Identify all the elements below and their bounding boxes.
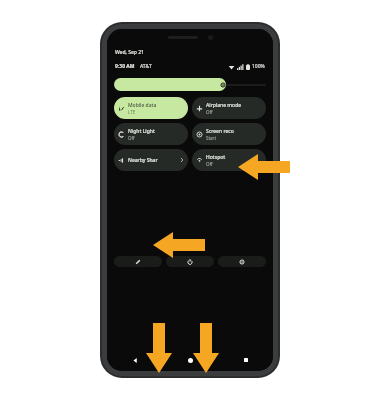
staticText: 100% xyxy=(252,63,265,70)
staticText: Off xyxy=(128,135,135,141)
button[interactable]: Power xyxy=(166,256,214,267)
staticText: Airplane mode xyxy=(206,102,242,109)
button[interactable]: Airplane mode xyxy=(192,97,266,119)
staticText: Wed, Sep 21 xyxy=(115,49,144,56)
staticText: Off xyxy=(206,109,213,115)
button[interactable]: Brightness xyxy=(114,78,266,91)
staticText: Nearby Shar xyxy=(128,157,158,164)
staticText: Screen reco xyxy=(206,128,234,135)
staticText: Start xyxy=(206,135,217,141)
staticText: LTE xyxy=(128,109,136,115)
button[interactable]: Edit xyxy=(114,256,162,267)
button[interactable]: Home xyxy=(163,351,218,369)
button[interactable]: Screen reco xyxy=(192,123,266,145)
button[interactable]: Settings xyxy=(218,256,266,267)
staticText: Mobile data xyxy=(128,102,157,109)
button[interactable]: Back xyxy=(107,351,163,369)
button[interactable]: Mobile data xyxy=(114,97,188,119)
staticText: Night Light xyxy=(128,128,155,135)
staticText: 9:30 AM xyxy=(115,63,135,70)
staticText: Hotspot xyxy=(206,154,226,161)
button[interactable]: Nearby Shar xyxy=(114,149,188,171)
button[interactable]: Night Light xyxy=(114,123,188,145)
button[interactable]: Hotspot xyxy=(192,149,266,171)
staticText: Off xyxy=(206,161,213,167)
button[interactable]: Recents xyxy=(218,351,273,369)
staticText: AT&T xyxy=(140,63,152,70)
